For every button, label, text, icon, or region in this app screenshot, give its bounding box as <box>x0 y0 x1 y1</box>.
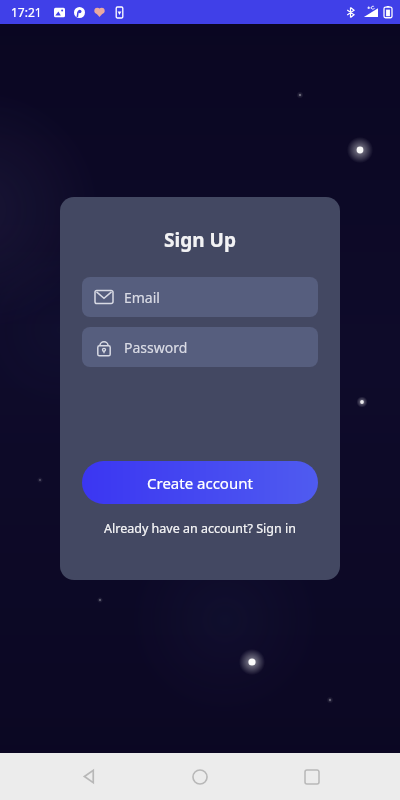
button[interactable]: Back <box>64 753 112 800</box>
button[interactable]: Email <box>82 277 318 317</box>
staticText: Password <box>124 338 188 357</box>
staticText: Create account <box>147 473 253 493</box>
staticText: Email <box>124 288 160 307</box>
staticText: Sign Up <box>60 227 340 253</box>
button[interactable]: Create account <box>82 461 318 504</box>
button[interactable]: Already have an account? Sign in <box>60 520 340 537</box>
button[interactable]: Home <box>176 753 224 800</box>
staticText: 17:21 <box>11 4 42 20</box>
staticText: Already have an account? Sign in <box>104 520 296 537</box>
button[interactable]: Password <box>82 327 318 367</box>
button[interactable]: Recent apps <box>288 753 336 800</box>
